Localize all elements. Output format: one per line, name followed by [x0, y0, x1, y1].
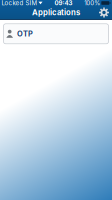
button[interactable]: OTP: [3, 24, 108, 44]
staticText: Locked SIM: [1, 0, 37, 7]
staticText: 100%: [84, 0, 100, 7]
staticText: 09:43: [54, 0, 72, 7]
staticText: OTP: [17, 29, 33, 38]
button[interactable]: Settings: [99, 7, 109, 17]
staticText: Applications: [32, 8, 80, 17]
